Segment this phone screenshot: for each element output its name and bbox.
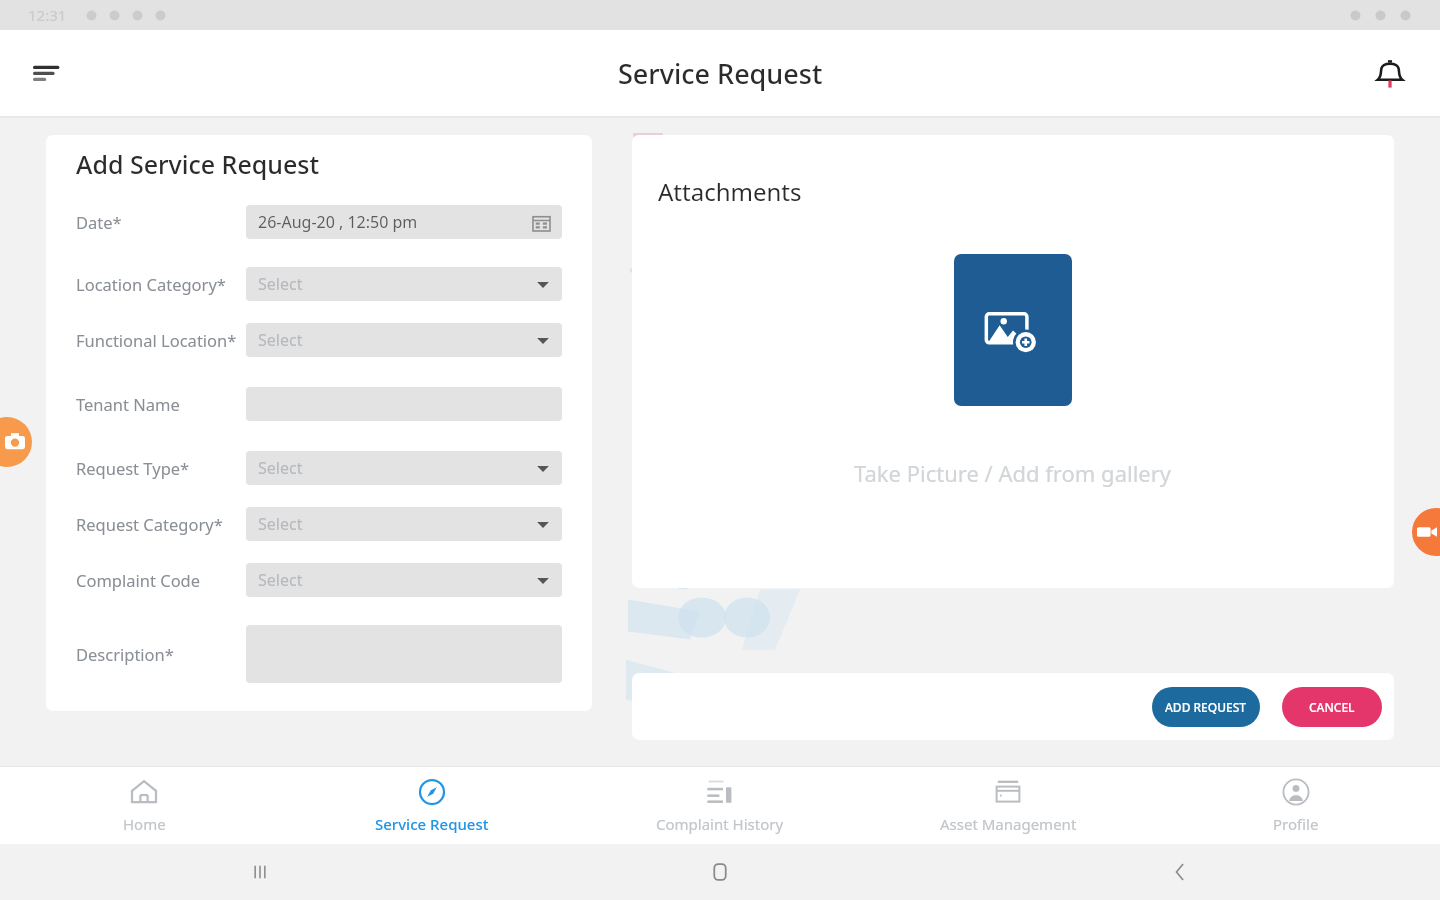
staticText: Select [258, 457, 303, 479]
staticText: Complaint History [656, 814, 784, 834]
button[interactable]: Home [0, 766, 288, 844]
staticText: Add Service Request [76, 147, 320, 181]
staticText: Description* [76, 643, 174, 665]
button[interactable]: ADD REQUEST [1152, 687, 1260, 727]
staticText: Select [258, 273, 303, 295]
button[interactable]: Select [246, 563, 562, 597]
staticText: Profile [1273, 814, 1319, 834]
staticText: Service Request [618, 55, 823, 92]
button[interactable]: Record video [1412, 508, 1440, 556]
staticText: Request Category* [76, 513, 223, 535]
staticText: Request Type* [76, 457, 190, 479]
staticText: Date* [76, 211, 122, 233]
button[interactable]: Menu [18, 45, 74, 101]
button[interactable]: Add attachment [954, 254, 1072, 406]
button[interactable]: Select [246, 451, 562, 485]
staticText: Asset Management [940, 814, 1077, 834]
staticText: ADD REQUEST [1165, 699, 1247, 715]
button[interactable]: Recents [30, 844, 490, 900]
staticText: 26-Aug-20 , 12:50 pm [258, 211, 418, 233]
button[interactable]: Complaint History [576, 766, 864, 844]
button[interactable]: 26-Aug-20 , 12:50 pm [246, 205, 562, 239]
button[interactable]: Asset Management [864, 766, 1152, 844]
button[interactable]: Select [246, 267, 562, 301]
staticText: Functional Location* [76, 329, 237, 351]
button[interactable]: Back [950, 844, 1410, 900]
staticText: Attachments [658, 175, 802, 208]
staticText: 12:31 [28, 5, 67, 25]
staticText: Service Request [375, 814, 489, 834]
staticText: Select [258, 569, 303, 591]
button[interactable]: Select [246, 323, 562, 357]
staticText: Home [123, 814, 166, 834]
staticText: Tenant Name [76, 393, 180, 415]
staticText: Location Category* [76, 273, 226, 295]
button[interactable]: Home [490, 844, 950, 900]
button[interactable]: Take photo [0, 417, 32, 467]
button[interactable]: Service Request [288, 766, 576, 844]
staticText: CANCEL [1309, 699, 1355, 715]
button[interactable]: Profile [1152, 766, 1440, 844]
button[interactable]: Select [246, 507, 562, 541]
button[interactable]: Notifications [1362, 45, 1418, 101]
staticText: Complaint Code [76, 569, 201, 591]
button[interactable]: CANCEL [1282, 687, 1382, 727]
staticText: Select [258, 329, 303, 351]
staticText: Select [258, 513, 303, 535]
staticText: Take Picture / Add from gallery [854, 458, 1172, 488]
